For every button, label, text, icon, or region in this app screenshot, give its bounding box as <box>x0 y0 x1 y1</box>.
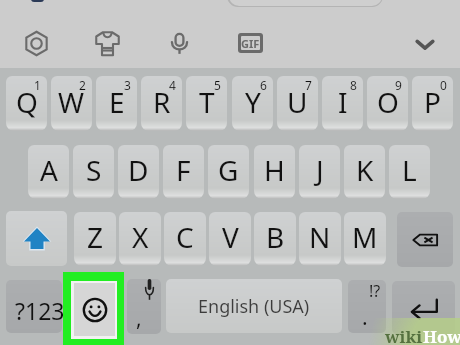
staticText: E <box>109 83 125 121</box>
staticText: R <box>153 83 171 121</box>
button[interactable]: W <box>51 76 92 131</box>
button[interactable]: G <box>208 145 249 199</box>
button[interactable]: Q <box>6 76 47 131</box>
button[interactable]: F <box>163 145 204 199</box>
button[interactable]: S <box>73 145 114 199</box>
button[interactable]: Backspace <box>397 212 453 267</box>
staticText: 2 <box>79 77 86 93</box>
staticText: Y <box>245 83 261 121</box>
staticText: M <box>352 218 378 256</box>
staticText: V <box>222 218 239 256</box>
staticText: . <box>362 303 368 332</box>
button[interactable]: O <box>367 76 408 131</box>
staticText: D <box>128 151 149 189</box>
staticText: English (USA) <box>198 294 310 319</box>
staticText: !? <box>369 280 381 302</box>
staticText: B <box>266 218 285 256</box>
staticText: GIF <box>241 36 260 50</box>
staticText: N <box>309 218 331 256</box>
button[interactable]: ?123 <box>15 295 65 326</box>
button[interactable]: P <box>412 76 453 131</box>
button[interactable]: Z <box>74 212 116 266</box>
button[interactable]: Symbols <box>6 280 62 333</box>
button[interactable]: H <box>254 145 295 199</box>
button[interactable]: N <box>299 212 341 266</box>
staticText: 3 <box>124 77 131 93</box>
staticText: A <box>40 151 58 189</box>
staticText: X <box>132 218 149 256</box>
button[interactable]: Space <box>166 279 342 333</box>
staticText: O <box>377 83 399 121</box>
staticText: F <box>176 151 191 189</box>
staticText: , <box>136 304 142 333</box>
button[interactable]: Theme <box>89 25 125 61</box>
button[interactable]: Settings <box>18 25 54 61</box>
staticText: K <box>356 151 374 189</box>
button[interactable]: U <box>277 76 318 131</box>
button[interactable]: K <box>344 145 385 199</box>
button[interactable]: D <box>118 145 159 199</box>
staticText: 0 <box>440 77 447 93</box>
staticText: L <box>402 151 417 189</box>
button[interactable]: Enter <box>392 281 455 334</box>
staticText: 4 <box>169 77 176 93</box>
button[interactable]: T <box>186 76 227 131</box>
button[interactable]: M <box>344 212 386 266</box>
button[interactable]: X <box>119 212 161 266</box>
staticText: 1 <box>34 77 41 93</box>
button[interactable]: C <box>164 212 206 266</box>
staticText: P <box>424 83 441 121</box>
button[interactable]: Emoji <box>74 283 115 336</box>
staticText: 9 <box>395 77 402 93</box>
staticText: How <box>423 325 460 345</box>
staticText: 5 <box>214 77 221 93</box>
button[interactable]: E <box>96 76 137 131</box>
button[interactable]: I <box>322 76 363 131</box>
button[interactable]: Comma <box>127 279 161 334</box>
button[interactable]: Period <box>348 280 386 333</box>
button[interactable]: B <box>254 212 296 266</box>
button[interactable]: J <box>299 145 340 199</box>
button[interactable]: Y <box>232 76 273 131</box>
staticText: G <box>218 151 239 189</box>
staticText: 7 <box>305 77 312 93</box>
button[interactable]: A <box>28 145 69 199</box>
staticText: Q <box>16 83 38 121</box>
staticText: Z <box>87 218 104 256</box>
staticText: I <box>338 83 348 121</box>
button[interactable]: V <box>209 212 251 266</box>
button[interactable]: Shift <box>6 211 67 266</box>
button[interactable]: Voice input <box>161 25 197 61</box>
button[interactable]: L <box>389 145 430 199</box>
staticText: C <box>176 218 194 256</box>
staticText: W <box>58 83 85 121</box>
staticText: S <box>86 151 102 189</box>
button[interactable]: R <box>141 76 182 131</box>
staticText: U <box>287 83 308 121</box>
staticText: T <box>199 83 215 121</box>
staticText: 8 <box>350 77 357 93</box>
staticText: H <box>264 151 285 189</box>
staticText: 6 <box>260 77 267 93</box>
button[interactable]: Collapse keyboard <box>407 26 443 62</box>
button[interactable]: GIF <box>232 25 268 61</box>
staticText: wiki <box>385 325 423 345</box>
staticText: J <box>316 151 324 189</box>
